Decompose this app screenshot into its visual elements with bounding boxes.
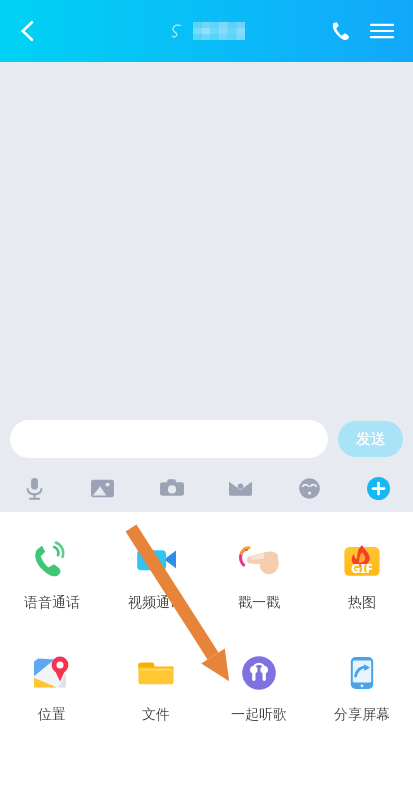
staticText: 视频通话 <box>128 594 184 612</box>
button[interactable]: 戳一戳 <box>207 538 310 612</box>
staticText: 位置 <box>38 706 66 724</box>
button[interactable]: Camera <box>137 467 206 509</box>
button[interactable]: Envelope <box>206 467 275 509</box>
staticText: GIF <box>351 559 373 577</box>
button[interactable]: 分享屏幕 <box>310 650 413 724</box>
button[interactable]: 语音通话 <box>0 538 104 612</box>
staticText: 语音通话 <box>24 594 80 612</box>
button[interactable]: 发送 <box>338 421 403 457</box>
staticText: 发送 <box>356 430 386 449</box>
button[interactable]: GIF <box>310 538 413 612</box>
button[interactable]: 一起听歌 <box>207 650 310 724</box>
staticText: 分享屏幕 <box>334 706 390 724</box>
button[interactable]: Call <box>319 10 361 52</box>
button[interactable]: More <box>344 467 413 509</box>
button[interactable]: Emoji <box>275 467 344 509</box>
button[interactable]: 文件 <box>104 650 207 724</box>
staticText: 热图 <box>348 594 376 612</box>
staticText: 一起听歌 <box>231 706 287 724</box>
staticText: 文件 <box>142 706 170 724</box>
button[interactable]: Voice <box>0 467 68 509</box>
button[interactable]: 视频通话 <box>104 538 207 612</box>
button[interactable]: 位置 <box>0 650 104 724</box>
staticText: 戳一戳 <box>238 594 280 612</box>
button[interactable]: Menu <box>361 10 403 52</box>
button[interactable]: Message input <box>10 420 328 458</box>
button[interactable]: Photo <box>68 467 137 509</box>
button[interactable]: Back <box>6 9 50 53</box>
